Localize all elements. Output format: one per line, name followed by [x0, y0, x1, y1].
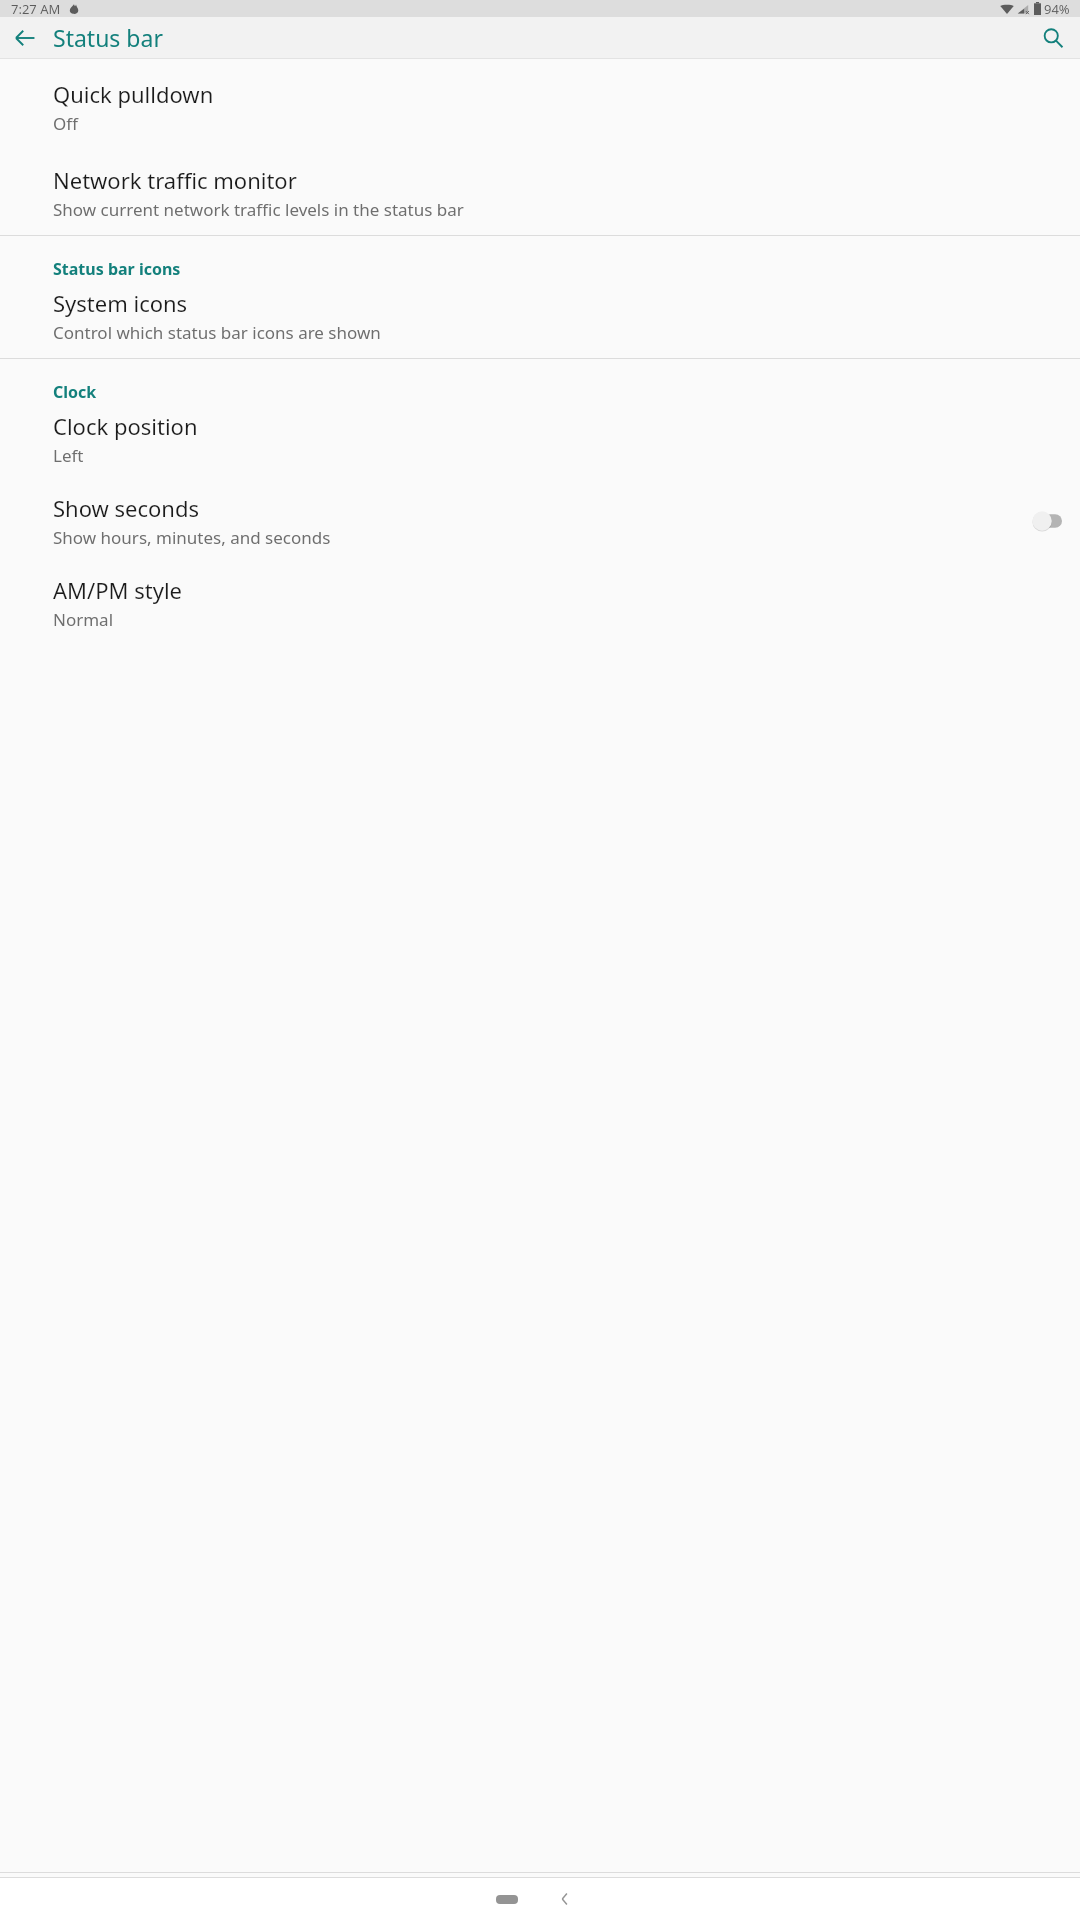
- staticText: Show current network traffic levels in t…: [53, 198, 464, 221]
- staticText: Control which status bar icons are shown: [53, 321, 381, 344]
- staticText: Show seconds: [53, 493, 200, 523]
- button[interactable]: Show seconds toggle: [1032, 510, 1062, 532]
- button[interactable]: System icons: [0, 288, 1080, 344]
- staticText: Status bar icons: [53, 258, 181, 280]
- button[interactable]: AM/PM style: [0, 575, 1080, 631]
- staticText: Show hours, minutes, and seconds: [53, 526, 331, 549]
- staticText: Clock position: [53, 411, 198, 441]
- staticText: Status bar: [53, 22, 163, 53]
- staticText: Normal: [53, 608, 114, 631]
- staticText: Off: [53, 112, 78, 135]
- staticText: 94%: [1044, 0, 1070, 17]
- button[interactable]: Network traffic monitor: [0, 165, 1080, 221]
- button[interactable]: Back: [548, 1882, 582, 1916]
- button[interactable]: Home: [484, 1882, 530, 1916]
- button[interactable]: Quick pulldown: [0, 79, 1080, 135]
- button[interactable]: Back: [6, 19, 44, 57]
- button[interactable]: Show seconds: [0, 493, 1080, 549]
- staticText: Network traffic monitor: [53, 165, 297, 195]
- staticText: Quick pulldown: [53, 79, 214, 109]
- staticText: 7:27 AM: [11, 0, 61, 17]
- staticText: Clock: [53, 381, 97, 403]
- staticText: AM/PM style: [53, 575, 182, 605]
- staticText: Left: [53, 444, 84, 467]
- staticText: System icons: [53, 288, 188, 318]
- button[interactable]: Search: [1034, 19, 1072, 57]
- button[interactable]: Clock position: [0, 411, 1080, 467]
